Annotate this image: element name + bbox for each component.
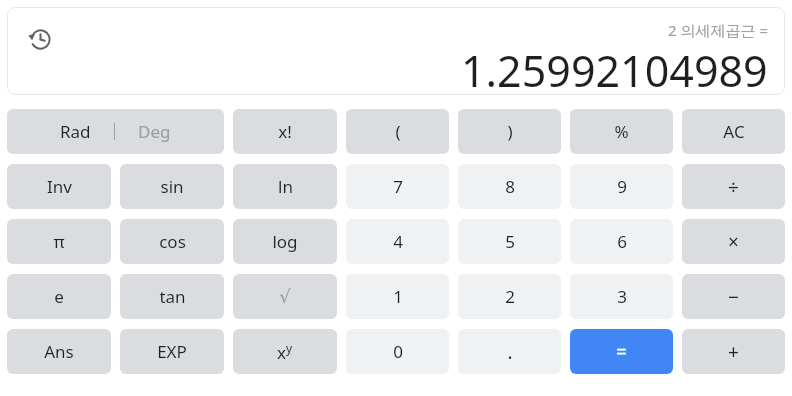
- button[interactable]: 0: [346, 329, 449, 374]
- staticText: 4: [393, 230, 403, 253]
- staticText: 6: [617, 230, 627, 253]
- staticText: sin: [160, 175, 184, 198]
- button[interactable]: cos: [120, 219, 224, 264]
- staticText: 3: [617, 285, 627, 308]
- staticText: .: [507, 339, 513, 365]
- button[interactable]: History: [21, 20, 59, 58]
- staticText: 2: [505, 285, 515, 308]
- staticText: 0: [393, 340, 403, 363]
- button[interactable]: ln: [233, 164, 337, 209]
- staticText: +: [728, 339, 739, 365]
- button[interactable]: Inv: [7, 164, 111, 209]
- staticText: ln: [278, 175, 293, 198]
- staticText: log: [272, 230, 298, 253]
- staticText: EXP: [157, 340, 187, 363]
- staticText: 5: [505, 230, 515, 253]
- button[interactable]: 3: [570, 274, 673, 319]
- staticText: ×: [728, 229, 739, 255]
- staticText: π: [53, 230, 65, 253]
- staticText: √: [279, 286, 291, 307]
- button[interactable]: Ans: [7, 329, 111, 374]
- button[interactable]: (: [346, 109, 449, 154]
- button[interactable]: 1: [346, 274, 449, 319]
- staticText: 1: [393, 285, 403, 308]
- button[interactable]: .: [458, 329, 561, 374]
- staticText: e: [54, 285, 64, 308]
- button[interactable]: x!: [233, 109, 337, 154]
- button[interactable]: sin: [120, 164, 224, 209]
- button[interactable]: xy: [233, 329, 337, 374]
- button[interactable]: 4: [346, 219, 449, 264]
- button[interactable]: 2: [458, 274, 561, 319]
- button[interactable]: √: [233, 274, 337, 319]
- staticText: Inv: [47, 175, 72, 198]
- staticText: AC: [723, 120, 745, 143]
- button[interactable]: 5: [458, 219, 561, 264]
- staticText: −: [728, 284, 739, 310]
- staticText: Ans: [44, 340, 74, 363]
- staticText: 8: [505, 175, 515, 198]
- staticText: 1.25992104989: [461, 41, 768, 95]
- button[interactable]: Rad: [7, 109, 224, 154]
- button[interactable]: ×: [682, 219, 785, 264]
- button[interactable]: +: [682, 329, 785, 374]
- button[interactable]: =: [570, 329, 673, 374]
- staticText: =: [616, 339, 627, 365]
- button[interactable]: EXP: [120, 329, 224, 374]
- staticText: tan: [159, 285, 186, 308]
- button[interactable]: log: [233, 219, 337, 264]
- button[interactable]: 9: [570, 164, 673, 209]
- button[interactable]: −: [682, 274, 785, 319]
- staticText: 7: [393, 175, 403, 198]
- button[interactable]: AC: [682, 109, 785, 154]
- staticText: Deg: [138, 120, 171, 143]
- button[interactable]: tan: [120, 274, 224, 319]
- button[interactable]: 7: [346, 164, 449, 209]
- staticText: %: [614, 120, 629, 143]
- button[interactable]: π: [7, 219, 111, 264]
- staticText: x!: [278, 120, 292, 143]
- staticText: ÷: [728, 174, 739, 200]
- staticText: xy: [277, 340, 293, 364]
- staticText: (: [395, 120, 401, 143]
- button[interactable]: 8: [458, 164, 561, 209]
- button[interactable]: e: [7, 274, 111, 319]
- button[interactable]: 6: [570, 219, 673, 264]
- button[interactable]: ÷: [682, 164, 785, 209]
- staticText: ): [507, 120, 513, 143]
- staticText: 2 의세제곱근 =: [668, 20, 768, 40]
- staticText: Rad: [60, 120, 91, 143]
- staticText: 9: [617, 175, 627, 198]
- button[interactable]: ): [458, 109, 561, 154]
- staticText: cos: [159, 230, 186, 253]
- button[interactable]: %: [570, 109, 673, 154]
